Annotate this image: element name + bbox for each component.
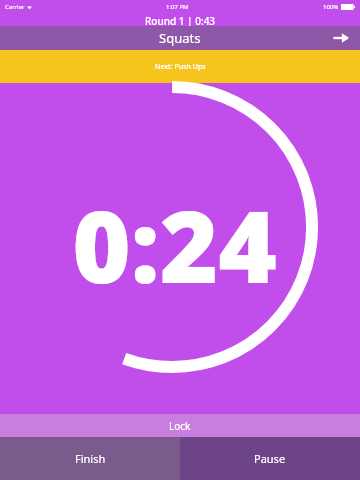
- button[interactable]: Lock: [0, 414, 360, 437]
- staticText: Finish: [75, 451, 106, 466]
- button[interactable]: Next: Push Ups: [0, 50, 360, 83]
- staticText: 0:24: [72, 176, 277, 312]
- staticText: Round 1 | 0:43: [145, 14, 216, 26]
- button[interactable]: Finish: [0, 437, 180, 480]
- staticText: Carrier: [5, 3, 25, 11]
- button[interactable]: Next exercise: [330, 27, 352, 49]
- staticText: 100%: [323, 3, 339, 11]
- staticText: Lock: [169, 419, 191, 433]
- staticText: Pause: [254, 451, 286, 466]
- staticText: Squats: [159, 29, 201, 47]
- staticText: Next: Push Ups: [155, 62, 206, 72]
- staticText: 1:07 PM: [166, 3, 189, 11]
- button[interactable]: Squats: [0, 26, 360, 50]
- button[interactable]: Pause: [180, 437, 360, 480]
